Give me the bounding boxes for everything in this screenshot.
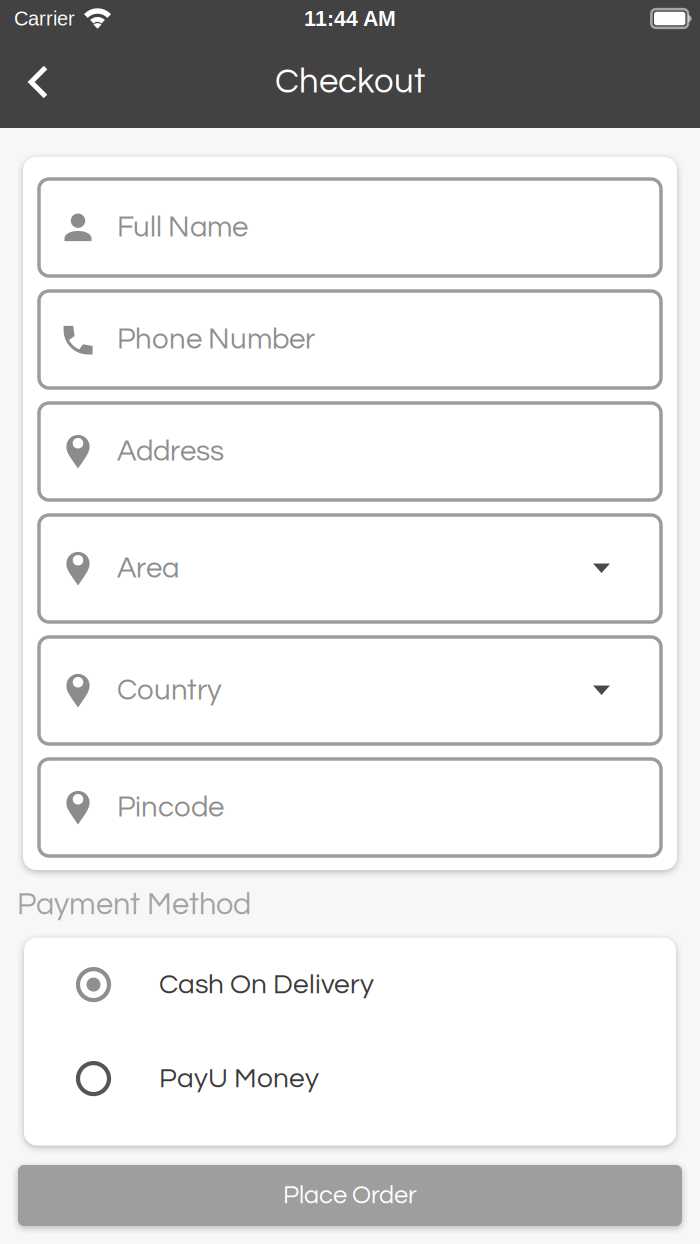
staticText: Cash On Delivery [159, 970, 374, 999]
button[interactable]: Full Name [39, 179, 661, 276]
staticText: Address [117, 436, 224, 467]
staticText: Phone Number [117, 324, 315, 355]
button[interactable]: Cash On Delivery [24, 938, 676, 1032]
button[interactable]: Place Order [18, 1165, 682, 1226]
button[interactable]: Pincode [39, 759, 661, 856]
button[interactable]: PayU Money [24, 1032, 676, 1126]
button[interactable]: Address [39, 403, 661, 500]
staticText: Full Name [117, 212, 248, 243]
button[interactable]: Back [6, 50, 70, 114]
staticText: Country [117, 675, 222, 706]
staticText: PayU Money [159, 1064, 319, 1093]
staticText: Place Order [283, 1182, 417, 1209]
button[interactable]: Country [39, 637, 661, 744]
button[interactable]: Area [39, 515, 661, 622]
staticText: Carrier [14, 7, 75, 30]
button[interactable]: Phone Number [39, 291, 661, 388]
staticText: Pincode [117, 792, 224, 823]
staticText: 11:44 AM [304, 7, 396, 30]
staticText: Area [117, 553, 179, 584]
staticText: Checkout [275, 64, 425, 100]
staticText: Payment Method [17, 889, 251, 921]
